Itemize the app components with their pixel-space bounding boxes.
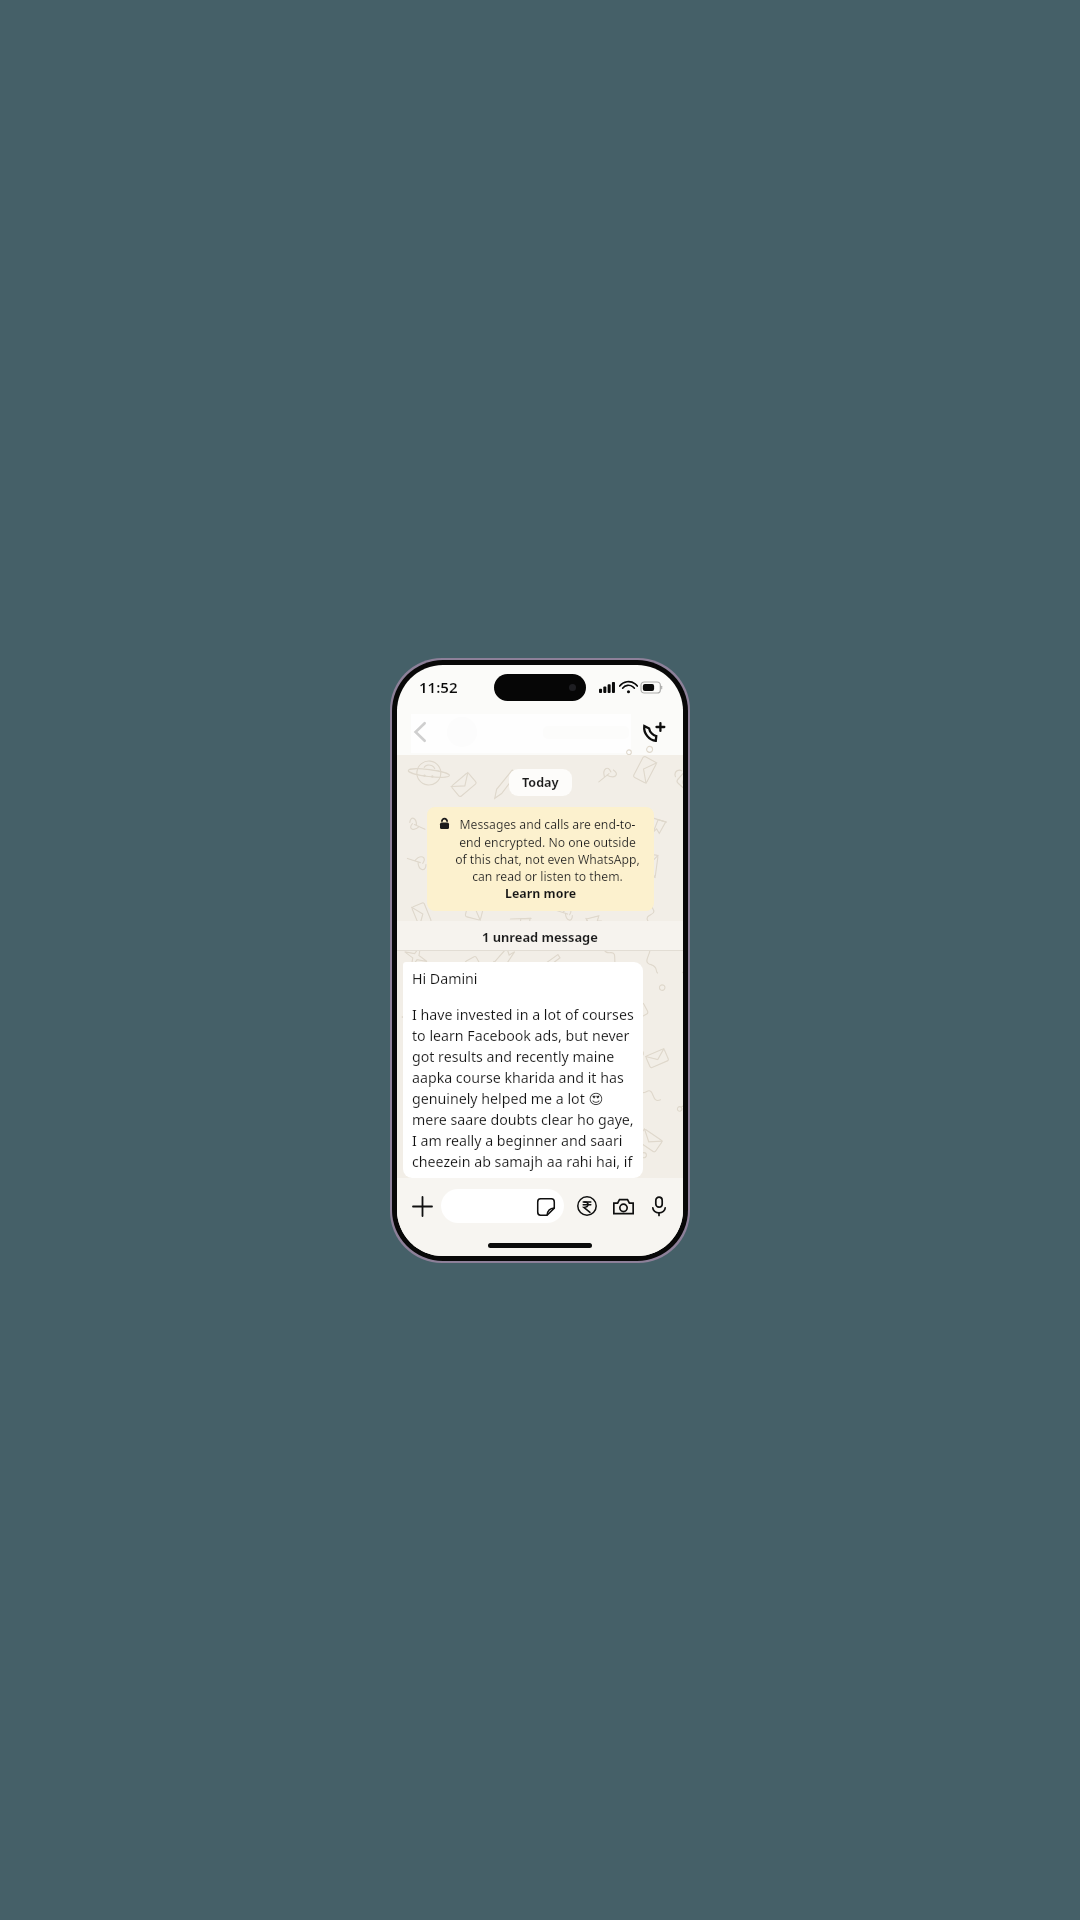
button[interactable]: Hi Damini [403, 962, 643, 1178]
staticText: I have invested in a lot of courses to l… [412, 1005, 634, 1174]
button[interactable] [411, 709, 631, 755]
staticText: 1 unread message [482, 928, 598, 945]
button[interactable]: Add call [633, 712, 673, 752]
button[interactable]: Payments [569, 1188, 605, 1224]
button[interactable]: Voice message [641, 1188, 677, 1224]
button[interactable]: Messages and calls are end-to-end encryp… [427, 807, 654, 911]
staticText: Hi Damini [412, 969, 478, 988]
button[interactable]: Stickers [536, 1197, 555, 1216]
button[interactable]: Attach [403, 1187, 441, 1225]
staticText: Learn more [505, 885, 577, 902]
button[interactable]: Back [401, 713, 439, 751]
staticText: 11:52 [419, 677, 458, 697]
staticText: Messages and calls are end-to-end encryp… [454, 816, 641, 884]
button[interactable]: Stickers [441, 1189, 564, 1223]
button[interactable]: Today [522, 774, 559, 791]
staticText: Today [522, 774, 559, 791]
button[interactable]: Camera [605, 1188, 641, 1224]
